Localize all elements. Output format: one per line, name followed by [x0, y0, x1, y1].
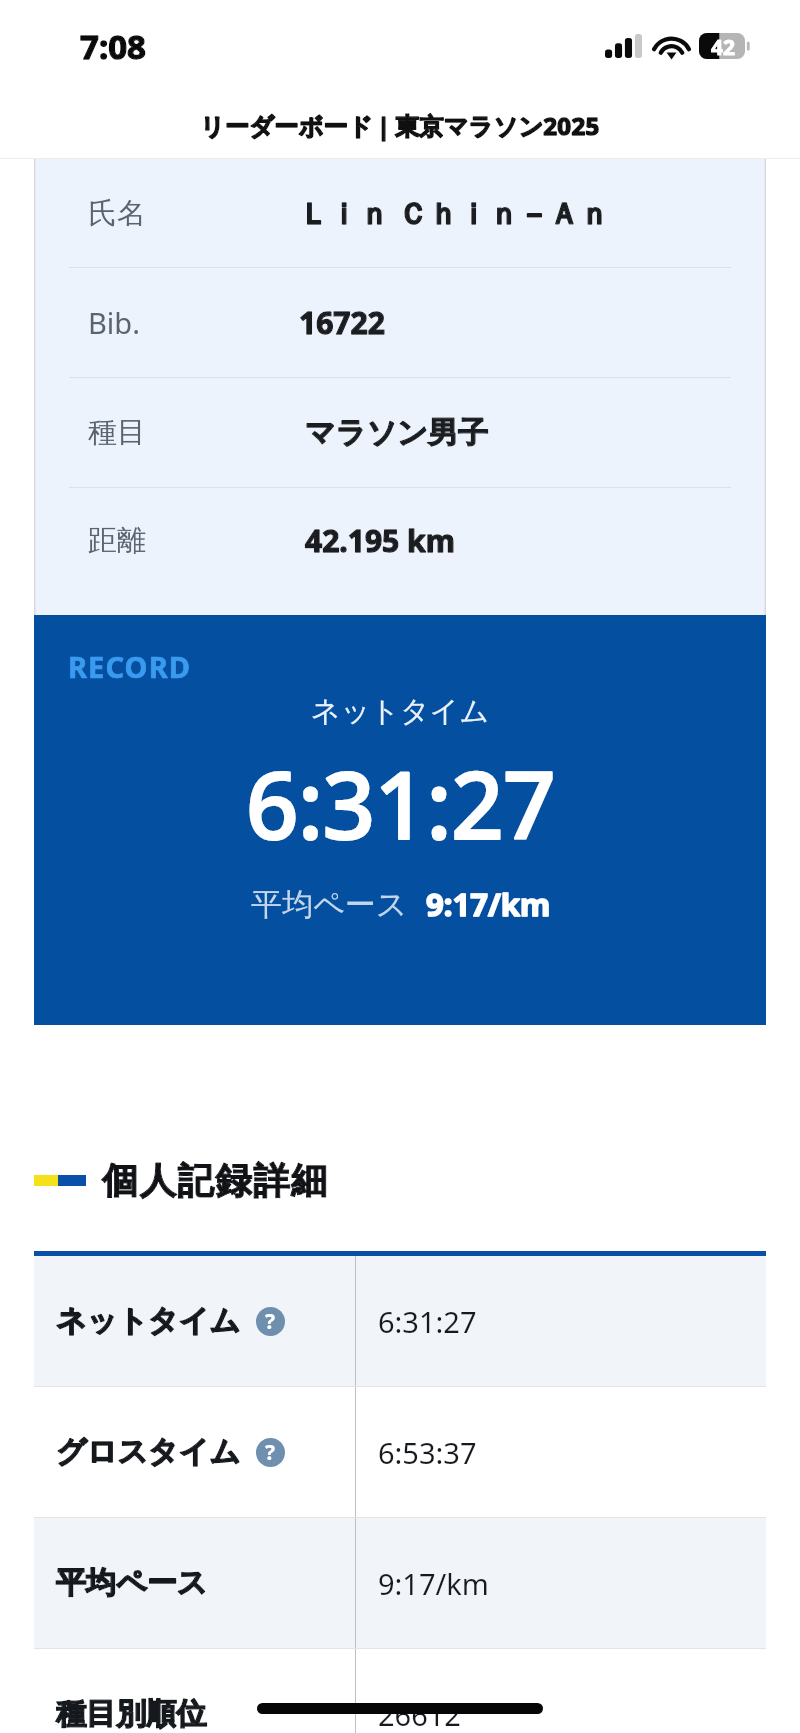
button[interactable]: Help — [256, 1307, 285, 1336]
button[interactable]: Help — [256, 1438, 285, 1467]
button[interactable]: グロスタイム — [34, 1387, 766, 1517]
staticText: 9:17/km — [426, 883, 551, 925]
other: Battery 42 percent — [699, 33, 751, 59]
staticText: 42.195 km — [305, 520, 455, 561]
staticText: 平均ペース — [56, 1564, 208, 1602]
staticText: ? — [265, 1438, 276, 1467]
staticText: グロスタイム — [56, 1433, 241, 1471]
staticText: 6:31:27 — [246, 741, 555, 866]
staticText: 16722 — [299, 302, 385, 343]
staticText: ネットタイム — [311, 693, 490, 730]
button[interactable]: 氏名 — [88, 159, 713, 267]
button[interactable]: 平均ペース — [34, 1518, 766, 1648]
staticText: マラソン男子 — [305, 414, 488, 452]
staticText: 9:17/km — [426, 883, 551, 925]
staticText: 42.195 km — [305, 520, 455, 561]
staticText: 個人記録詳細 — [102, 1158, 329, 1203]
staticText: 平均ペース — [251, 885, 408, 924]
staticText: 種目 — [88, 414, 146, 451]
staticText: 9:17/km — [378, 1564, 489, 1603]
staticText: Ｌｉｎ Ｃｈｉｎ－Ａｎ — [299, 193, 610, 233]
staticText: 個人記録詳細 — [102, 1158, 329, 1203]
button[interactable]: Bib. — [88, 268, 713, 377]
staticText: 26612 — [378, 1695, 461, 1733]
button[interactable]: 距離 — [88, 488, 713, 593]
staticText: マラソン男子 — [305, 414, 488, 452]
staticText: RECORD — [68, 647, 192, 686]
staticText: グロスタイム — [56, 1433, 241, 1471]
staticText: 平均ペース — [56, 1564, 208, 1602]
other: Wi-Fi — [656, 35, 687, 58]
staticText: 6:31:27 — [246, 741, 555, 866]
staticText: ネットタイム — [56, 1302, 241, 1340]
staticText: Ｌｉｎ Ｃｈｉｎ－Ａｎ — [299, 193, 610, 233]
button[interactable]: 種目 — [88, 378, 713, 487]
button[interactable]: 種目別順位 — [34, 1649, 766, 1733]
staticText: 6:53:37 — [378, 1433, 477, 1472]
staticText: 7:08 — [80, 24, 146, 69]
staticText: 種目別順位 — [56, 1695, 206, 1733]
staticText: 42 — [711, 33, 736, 59]
staticText: Bib. — [88, 303, 140, 342]
staticText: 7:08 — [80, 24, 146, 69]
other: Cellular signal — [605, 34, 642, 58]
button[interactable]: ネットタイム — [34, 1256, 766, 1386]
staticText: リーダーボード | 東京マラソン2025 — [200, 109, 600, 142]
staticText: リーダーボード | 東京マラソン2025 — [200, 109, 600, 142]
staticText: RECORD — [68, 647, 192, 686]
staticText: 氏名 — [88, 195, 146, 232]
staticText: ネットタイム — [56, 1302, 241, 1340]
staticText: 42 — [711, 33, 736, 59]
staticText: 種目別順位 — [56, 1695, 206, 1733]
staticText: ? — [265, 1307, 276, 1336]
staticText: 距離 — [88, 522, 146, 559]
staticText: 6:31:27 — [378, 1302, 477, 1341]
staticText: 16722 — [299, 302, 385, 343]
